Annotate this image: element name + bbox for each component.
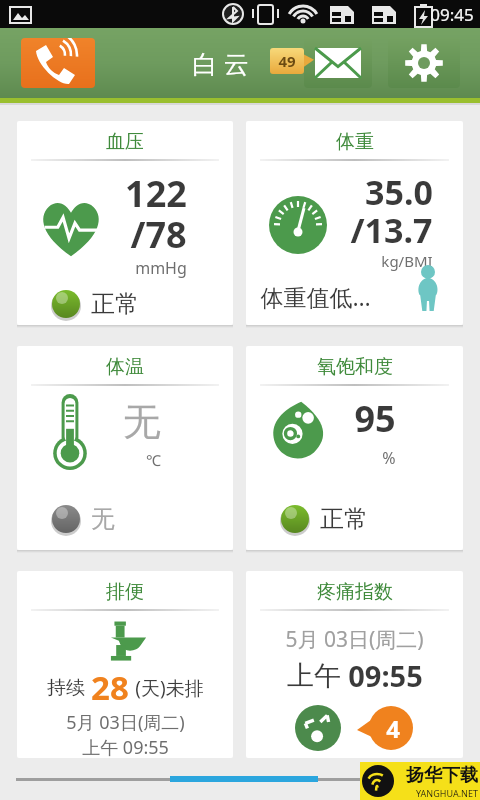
staticText: mmHg bbox=[135, 257, 187, 279]
staticText: 体温 bbox=[106, 355, 144, 379]
staticText: 上午 bbox=[287, 659, 341, 693]
staticText: /13.7 bbox=[350, 207, 433, 253]
staticText: 5月 03日(周二) bbox=[66, 710, 185, 735]
staticText: 95 bbox=[354, 394, 396, 443]
staticText: 4 bbox=[386, 712, 400, 745]
staticText: ℃ bbox=[146, 450, 161, 470]
staticText: 体重值低… bbox=[260, 281, 371, 312]
button[interactable]: Messages bbox=[304, 38, 372, 88]
staticText: 体重 bbox=[336, 130, 374, 154]
staticText: 正常 bbox=[91, 289, 139, 319]
button[interactable]: 氧饱和度 bbox=[246, 346, 463, 550]
button[interactable]: Settings bbox=[388, 38, 460, 88]
button[interactable]: 疼痛指数 bbox=[246, 571, 463, 758]
staticText: 09:55 bbox=[348, 656, 423, 695]
staticText: 09:45 bbox=[430, 3, 474, 26]
button[interactable]: 体重 bbox=[246, 121, 463, 325]
staticText: (天)未排 bbox=[135, 675, 204, 701]
button[interactable]: 体温 bbox=[17, 346, 233, 550]
staticText: 氧饱和度 bbox=[317, 355, 393, 379]
staticText: 持续 bbox=[47, 676, 85, 700]
staticText: 无 bbox=[123, 398, 161, 446]
staticText: 5月 03日(周二) bbox=[285, 625, 424, 654]
staticText: 正常 bbox=[320, 504, 368, 534]
staticText: 白 云 bbox=[192, 46, 249, 80]
staticText: 28 bbox=[91, 665, 129, 710]
staticText: 49 bbox=[278, 51, 296, 71]
staticText: % bbox=[382, 447, 396, 469]
staticText: 上午 09:55 bbox=[82, 735, 169, 758]
button[interactable]: 排便 bbox=[17, 571, 233, 758]
staticText: 疼痛指数 bbox=[317, 580, 393, 604]
button[interactable]: Call bbox=[21, 38, 95, 88]
staticText: 无 bbox=[91, 504, 115, 534]
staticText: 122 bbox=[125, 169, 187, 218]
staticText: /78 bbox=[130, 210, 187, 259]
staticText: kg/BMI bbox=[381, 251, 433, 271]
staticText: 扬华下载 bbox=[406, 764, 478, 787]
staticText: 35.0 bbox=[365, 169, 433, 215]
staticText: YANGHUA.NET bbox=[416, 787, 478, 799]
staticText: 血压 bbox=[106, 130, 144, 154]
staticText: 排便 bbox=[106, 580, 144, 604]
button[interactable]: 血压 bbox=[17, 121, 233, 325]
